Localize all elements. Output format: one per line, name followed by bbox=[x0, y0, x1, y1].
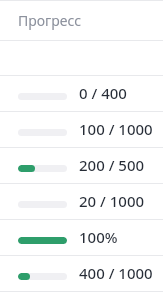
button[interactable]: Progress 200 / 500 bbox=[0, 147, 163, 183]
other: Progress 200 / 500 bbox=[18, 165, 67, 172]
staticText: 400 / 1000 bbox=[79, 263, 153, 283]
button[interactable]: Progress 100% bbox=[0, 219, 163, 255]
staticText: 20 / 1000 bbox=[79, 191, 145, 211]
button[interactable]: Прогресс bbox=[0, 1, 163, 40]
button[interactable]: Progress 400 / 1000 bbox=[0, 255, 163, 291]
staticText: Прогресс bbox=[18, 11, 82, 30]
button[interactable]: Progress 20 / 1000 bbox=[0, 183, 163, 219]
other: Progress 400 / 1000 bbox=[18, 273, 67, 280]
staticText: 0 / 400 bbox=[79, 83, 127, 103]
other: Progress 100% bbox=[18, 237, 67, 244]
button[interactable]: Progress 100 / 1000 bbox=[0, 111, 163, 147]
button[interactable]: Progress 0 / 400 bbox=[0, 75, 163, 111]
staticText: 200 / 500 bbox=[79, 155, 145, 175]
staticText: 100 / 1000 bbox=[79, 119, 153, 139]
staticText: 100% bbox=[79, 227, 118, 247]
